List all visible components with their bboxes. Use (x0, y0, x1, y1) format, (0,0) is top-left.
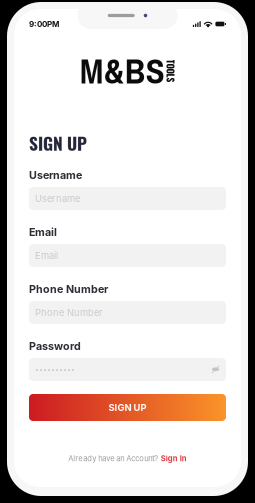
staticText: SIGN UP (29, 130, 87, 156)
staticText: Password (29, 339, 81, 352)
staticText: Sign In (161, 454, 187, 463)
staticText: M&BS (80, 48, 165, 94)
staticText: •••••••••• (35, 365, 75, 374)
button[interactable]: Already have an Account? (68, 454, 187, 463)
staticText: SIGN UP (108, 402, 146, 413)
button[interactable]: Username (29, 187, 226, 210)
staticText: TOOLS (159, 64, 182, 78)
button[interactable]: •••••••••• (29, 358, 226, 381)
staticText: Username (35, 193, 80, 204)
staticText: Email (29, 225, 57, 238)
staticText: Phone Number (29, 282, 108, 295)
staticText: Username (29, 168, 82, 181)
staticText: Email (35, 250, 58, 261)
staticText: Already have an Account? (68, 454, 158, 463)
staticText: 9:00PM (29, 19, 59, 29)
button[interactable]: Phone Number (29, 301, 226, 324)
button[interactable]: SIGN UP (29, 394, 226, 421)
button[interactable]: Email (29, 244, 226, 267)
staticText: Phone Number (35, 307, 103, 318)
